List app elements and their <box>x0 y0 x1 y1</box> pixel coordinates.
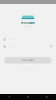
button[interactable]: Usuario <box>3 37 53 41</box>
button[interactable]: INGRESAR <box>4 57 52 64</box>
staticText: MOVISTAR <box>21 21 35 24</box>
staticText: Contraseña <box>8 45 17 47</box>
button[interactable]: Recent apps <box>37 94 56 100</box>
button[interactable]: Contraseña <box>3 44 53 48</box>
staticText: Usuario <box>8 38 14 40</box>
staticText: Mi Movistar <box>24 26 31 27</box>
button[interactable]: Back <box>0 94 19 100</box>
staticText: INGRESAR <box>21 58 34 62</box>
button[interactable]: Home <box>19 94 37 100</box>
